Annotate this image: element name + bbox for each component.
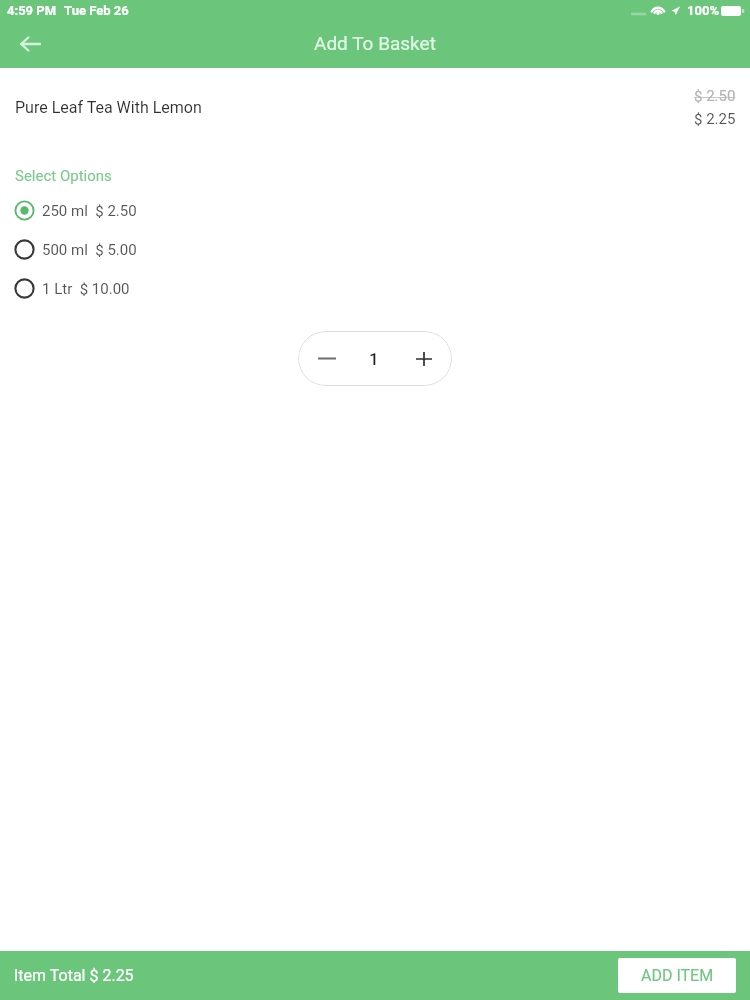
staticText: $ 2.25 bbox=[694, 110, 736, 126]
staticText: Select Options bbox=[15, 167, 112, 185]
button[interactable]: Decrease quantity bbox=[306, 336, 347, 381]
staticText: 100% bbox=[687, 3, 719, 18]
staticText: 1 bbox=[369, 349, 379, 369]
staticText: ADD ITEM bbox=[641, 966, 714, 985]
button[interactable]: 1 Ltr $ 10.00 bbox=[0, 269, 750, 308]
staticText: 4:59 PM bbox=[7, 3, 57, 18]
staticText: Add To Basket bbox=[314, 32, 436, 54]
staticText: Tue Feb 26 bbox=[64, 3, 129, 18]
staticText: 1 Ltr $ 10.00 bbox=[42, 280, 130, 298]
button[interactable]: Back bbox=[11, 25, 49, 63]
staticText: Item Total $ 2.25 bbox=[14, 966, 134, 985]
staticText: 500 ml $ 5.00 bbox=[42, 241, 137, 259]
staticText: $ 2.50 bbox=[694, 87, 736, 103]
button[interactable]: 250 ml $ 2.50 bbox=[0, 191, 750, 230]
staticText: 250 ml $ 2.50 bbox=[42, 202, 137, 220]
button[interactable]: 500 ml $ 5.00 bbox=[0, 230, 750, 269]
staticText: Pure Leaf Tea With Lemon bbox=[15, 98, 202, 117]
button[interactable]: ADD ITEM bbox=[618, 958, 736, 993]
button[interactable]: Increase quantity bbox=[403, 336, 444, 381]
